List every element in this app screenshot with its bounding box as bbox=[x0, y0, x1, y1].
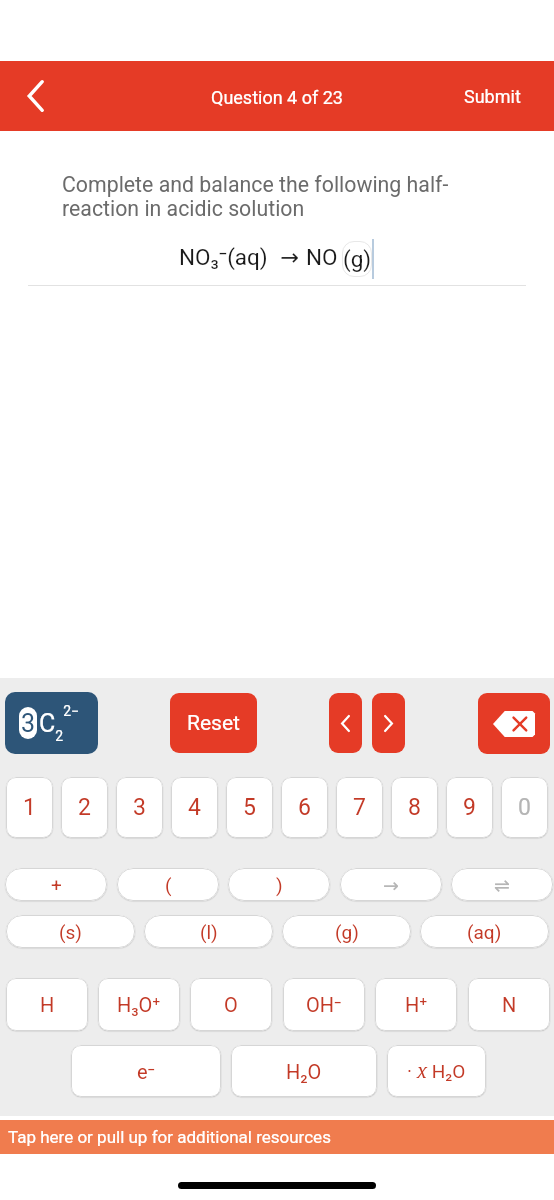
staticText: 6 bbox=[298, 794, 311, 821]
staticText: 9 bbox=[463, 794, 476, 821]
button[interactable]: H₂O bbox=[231, 1045, 377, 1097]
button[interactable]: (g) bbox=[342, 241, 372, 277]
staticText: NO bbox=[306, 244, 338, 270]
staticText: 1 bbox=[23, 794, 36, 821]
staticText: (s) bbox=[59, 921, 82, 943]
button[interactable]: + bbox=[5, 868, 107, 901]
button[interactable]: 4 bbox=[171, 777, 218, 838]
staticText: → bbox=[383, 874, 399, 896]
button[interactable]: Tap here or pull up for additional resou… bbox=[0, 1120, 554, 1154]
button[interactable]: OH⁻ bbox=[283, 978, 365, 1031]
button[interactable]: 3 bbox=[116, 777, 163, 838]
staticText: 8 bbox=[408, 794, 421, 821]
staticText: H₂O bbox=[286, 1060, 322, 1083]
staticText: N bbox=[502, 993, 517, 1016]
staticText: Reset bbox=[187, 711, 240, 736]
button[interactable]: Move cursor right bbox=[372, 693, 405, 753]
staticText: · x H₂O bbox=[407, 1058, 466, 1084]
staticText: e⁻ bbox=[137, 1060, 156, 1083]
staticText: + bbox=[51, 874, 62, 896]
button[interactable]: Backspace bbox=[478, 693, 550, 754]
button[interactable]: (s) bbox=[6, 915, 135, 948]
staticText: C22− bbox=[39, 703, 80, 745]
button[interactable]: Move cursor left bbox=[329, 693, 362, 753]
staticText: (g) bbox=[335, 921, 359, 943]
staticText: NO₃⁻(aq) bbox=[179, 244, 268, 270]
button[interactable]: · x H₂O bbox=[387, 1045, 486, 1097]
button[interactable]: e⁻ bbox=[71, 1045, 221, 1097]
staticText: ⇌ bbox=[494, 874, 510, 896]
button[interactable]: Back bbox=[12, 72, 60, 120]
staticText: H bbox=[40, 993, 55, 1016]
staticText: OH⁻ bbox=[306, 993, 342, 1016]
staticText: (g) bbox=[343, 246, 372, 272]
staticText: 0 bbox=[518, 794, 531, 821]
staticText: 7 bbox=[353, 794, 366, 821]
staticText: 4 bbox=[188, 794, 201, 821]
staticText: Complete and balance the following half-… bbox=[62, 172, 449, 222]
button[interactable]: 5 bbox=[226, 777, 273, 838]
button[interactable]: 8 bbox=[391, 777, 438, 838]
button[interactable]: (aq) bbox=[420, 915, 549, 948]
button[interactable]: (l) bbox=[144, 915, 273, 948]
button[interactable]: → bbox=[340, 868, 442, 901]
staticText: 5 bbox=[243, 794, 256, 821]
button[interactable]: 6 bbox=[281, 777, 328, 838]
button[interactable]: ) bbox=[228, 868, 330, 901]
staticText: → bbox=[280, 244, 299, 270]
staticText: 3 bbox=[133, 794, 146, 821]
button[interactable]: Reset bbox=[170, 693, 257, 753]
button[interactable]: 1 bbox=[6, 777, 53, 838]
button[interactable]: ⇌ bbox=[451, 868, 553, 901]
button[interactable]: Submit bbox=[440, 68, 554, 125]
staticText: O bbox=[224, 993, 238, 1016]
button[interactable]: O bbox=[190, 978, 272, 1031]
button[interactable]: 2 bbox=[61, 777, 108, 838]
button[interactable]: 0 bbox=[501, 777, 548, 838]
button[interactable]: N bbox=[468, 978, 550, 1031]
staticText: H⁺ bbox=[405, 993, 428, 1016]
staticText: ) bbox=[276, 874, 283, 896]
button[interactable]: Coefficient and charge bbox=[5, 692, 98, 754]
staticText: Tap here or pull up for additional resou… bbox=[8, 1127, 331, 1147]
staticText: 2 bbox=[78, 794, 91, 821]
button[interactable]: ( bbox=[117, 868, 219, 901]
staticText: H₃O⁺ bbox=[117, 993, 161, 1016]
staticText: (aq) bbox=[467, 921, 502, 943]
staticText: ( bbox=[165, 874, 172, 896]
button[interactable]: 9 bbox=[446, 777, 493, 838]
staticText: 3 bbox=[21, 709, 36, 738]
staticText: (l) bbox=[200, 921, 218, 943]
button[interactable]: (g) bbox=[282, 915, 411, 948]
staticText: Submit bbox=[464, 86, 521, 107]
button[interactable]: H bbox=[6, 978, 88, 1031]
staticText: Question 4 of 23 bbox=[211, 87, 343, 108]
button[interactable]: H⁺ bbox=[375, 978, 457, 1031]
button[interactable]: 7 bbox=[336, 777, 383, 838]
button[interactable]: H₃O⁺ bbox=[98, 978, 180, 1031]
